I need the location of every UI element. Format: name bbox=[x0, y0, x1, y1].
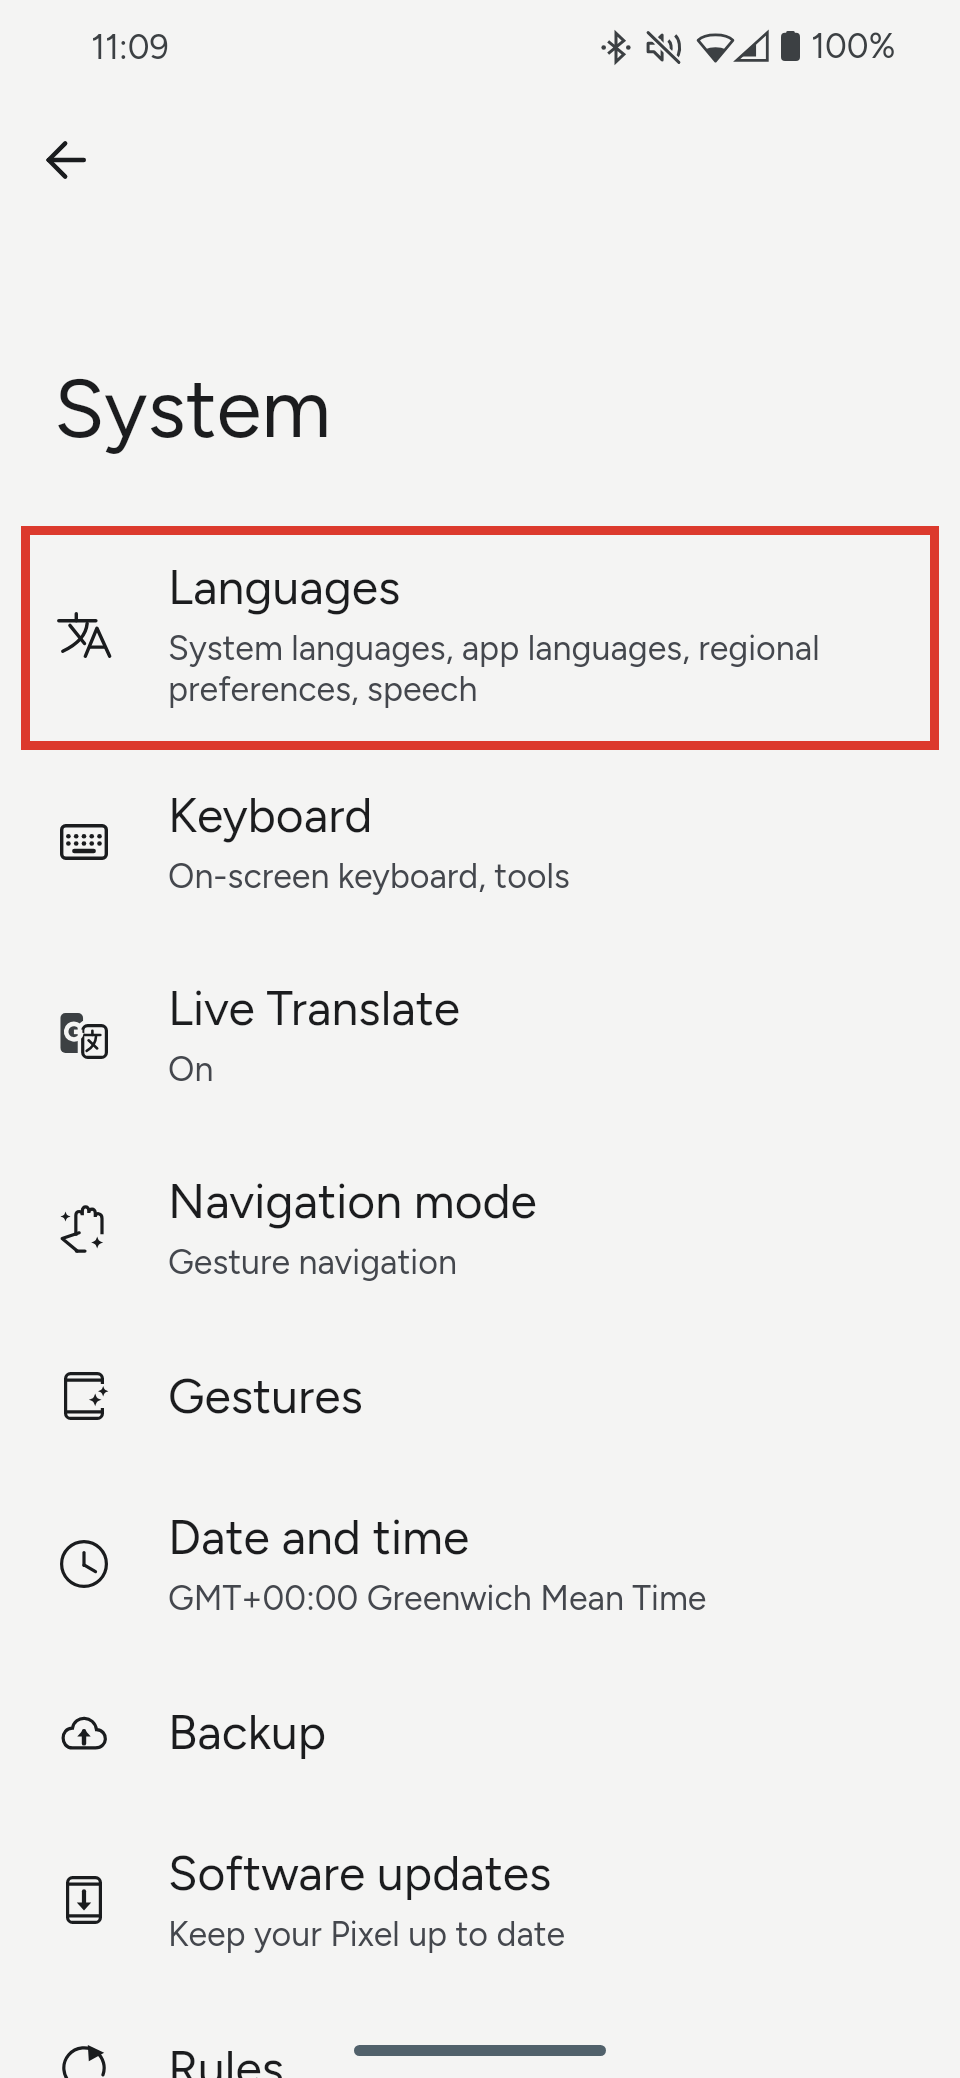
staticText: On bbox=[168, 1049, 214, 1090]
button[interactable]: Rules bbox=[0, 2001, 960, 2078]
staticText: Gesture navigation bbox=[168, 1242, 457, 1283]
staticText: Keep your Pixel up to date bbox=[168, 1914, 566, 1955]
staticText: Backup bbox=[168, 1703, 327, 1761]
staticText: On-screen keyboard, tools bbox=[168, 856, 570, 897]
staticText: Gestures bbox=[168, 1367, 363, 1425]
staticText: 11:09 bbox=[91, 27, 169, 68]
staticText: Software updates bbox=[168, 1844, 552, 1902]
button[interactable]: Keyboard bbox=[0, 750, 960, 943]
button[interactable]: Gestures bbox=[0, 1329, 960, 1472]
staticText: Rules bbox=[168, 2039, 284, 2078]
button[interactable]: Date and time bbox=[0, 1472, 960, 1665]
staticText: Languages bbox=[168, 558, 401, 616]
staticText: System bbox=[54, 359, 332, 457]
button[interactable]: Live Translate bbox=[0, 943, 960, 1136]
button[interactable]: Backup bbox=[0, 1665, 960, 1808]
staticText: GMT+00:00 Greenwich Mean Time bbox=[168, 1578, 707, 1619]
staticText: Date and time bbox=[168, 1508, 470, 1566]
staticText: System languages, app languages, regiona… bbox=[168, 628, 820, 709]
button[interactable]: Navigation mode bbox=[0, 1136, 960, 1329]
staticText: 100% bbox=[811, 26, 896, 67]
button[interactable]: Languages bbox=[0, 526, 960, 750]
button[interactable]: Software updates bbox=[0, 1808, 960, 2001]
staticText: Keyboard bbox=[168, 786, 373, 844]
staticText: Navigation mode bbox=[168, 1172, 537, 1230]
staticText: Live Translate bbox=[168, 979, 460, 1037]
button[interactable]: Back bbox=[26, 120, 106, 200]
